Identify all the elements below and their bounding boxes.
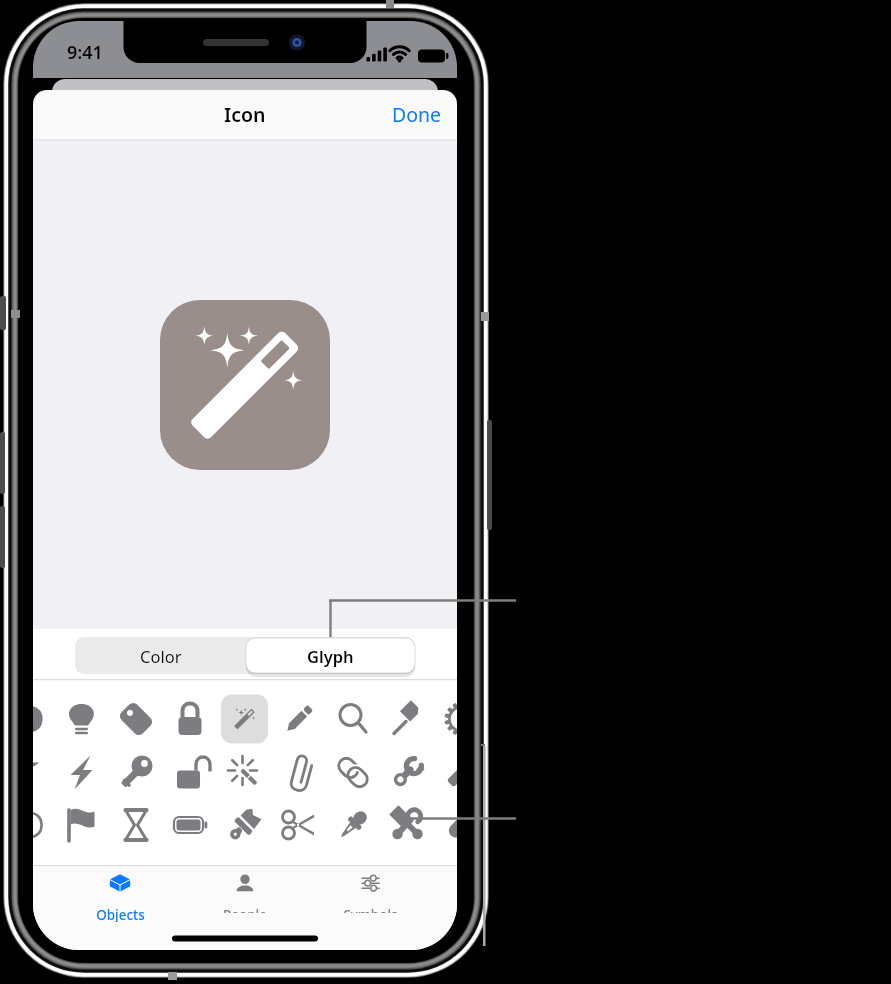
button[interactable]: People bbox=[203, 866, 287, 926]
staticText: Done bbox=[392, 101, 442, 128]
staticText: Icon bbox=[224, 101, 266, 125]
staticText: 9:41 bbox=[67, 40, 103, 64]
staticText: Objects bbox=[96, 906, 145, 922]
button[interactable]: Objects bbox=[78, 866, 162, 926]
staticText: Symbols bbox=[343, 906, 398, 922]
button[interactable]: Symbols bbox=[328, 866, 412, 926]
button[interactable]: Glyph bbox=[246, 638, 415, 673]
button[interactable]: Done bbox=[382, 95, 452, 133]
staticText: Color bbox=[140, 645, 182, 667]
staticText: Glyph bbox=[307, 645, 354, 667]
staticText: People bbox=[223, 906, 267, 922]
button[interactable]: Color bbox=[76, 638, 246, 673]
